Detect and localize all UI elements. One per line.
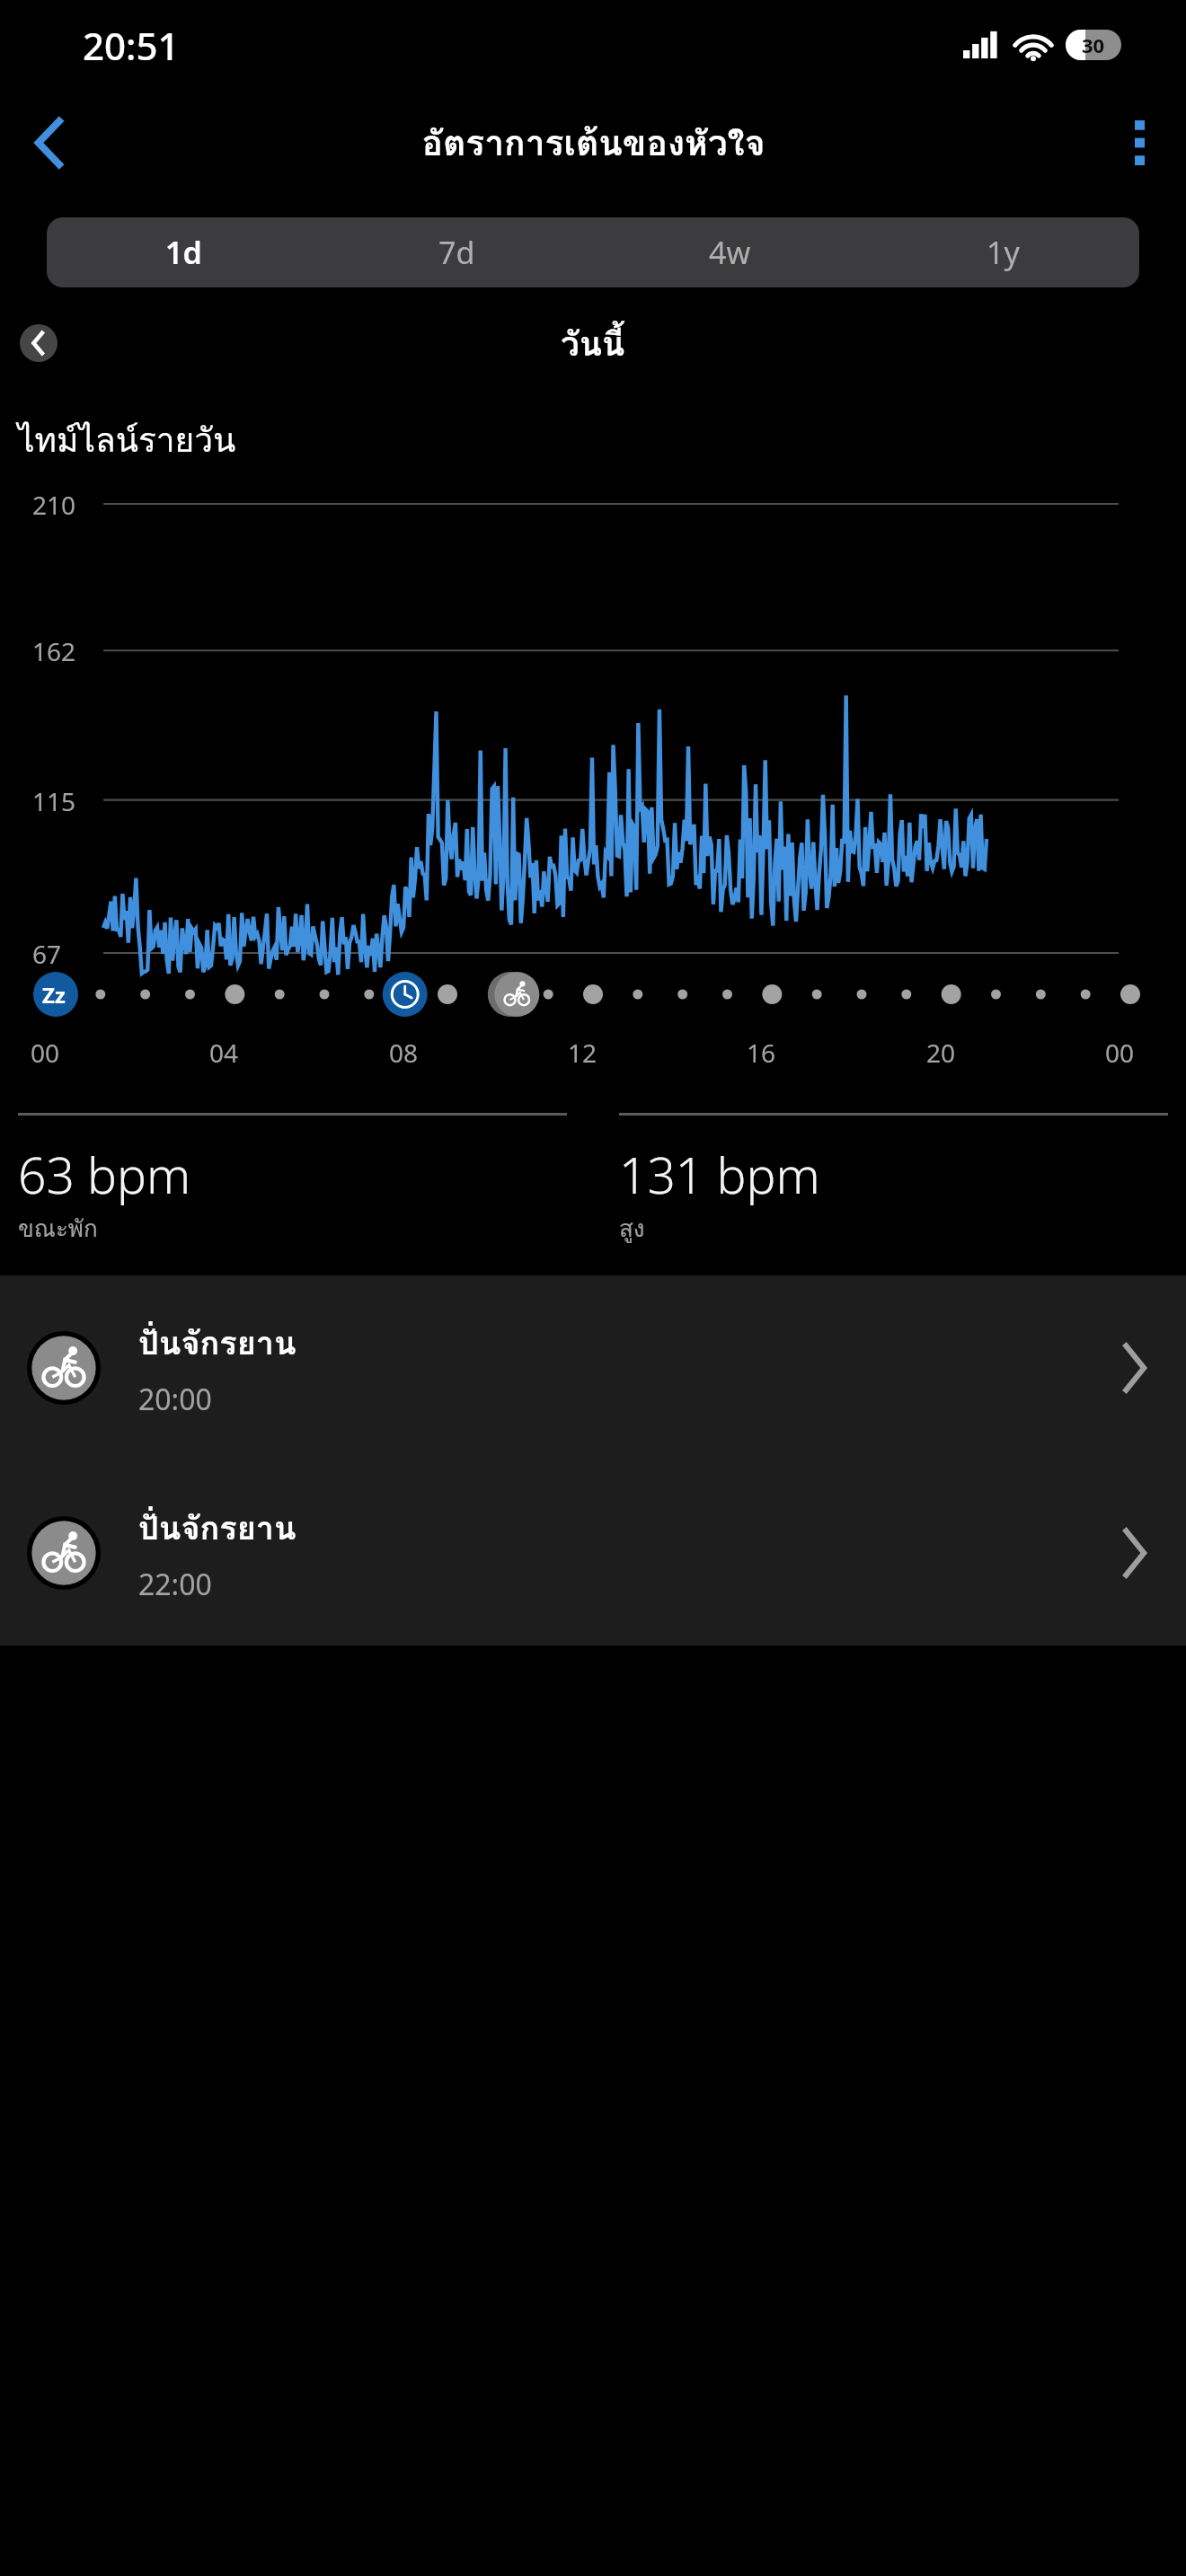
staticText: 115 bbox=[32, 784, 76, 818]
button[interactable]: More options bbox=[1093, 96, 1186, 190]
button[interactable]: Back bbox=[0, 93, 101, 193]
staticText: 12 bbox=[568, 1036, 597, 1070]
staticText: 22:00 bbox=[138, 1565, 212, 1604]
staticText: ขณะพัก bbox=[18, 1210, 98, 1247]
button[interactable]: Previous day bbox=[20, 324, 58, 362]
staticText: 162 bbox=[32, 634, 76, 668]
staticText: สูง bbox=[619, 1210, 645, 1247]
staticText: 67 bbox=[32, 937, 62, 971]
button[interactable]: ปั่นจักรยาน bbox=[0, 1460, 1186, 1645]
staticText: 20:00 bbox=[138, 1380, 212, 1419]
staticText: 7d bbox=[438, 232, 475, 273]
staticText: 131 bpm bbox=[619, 1141, 820, 1208]
staticText: 20 bbox=[926, 1036, 956, 1070]
staticText: Zz bbox=[42, 980, 66, 1010]
staticText: ปั่นจักรยาน bbox=[138, 1318, 296, 1369]
button[interactable]: 7d bbox=[320, 217, 593, 287]
button[interactable]: 1d bbox=[47, 217, 320, 287]
staticText: 4w bbox=[709, 232, 751, 273]
staticText: 00 bbox=[31, 1036, 60, 1070]
staticText: อัตราการเต้นของหัวใจ bbox=[421, 115, 766, 171]
staticText: ไทม์ไลน์รายวัน bbox=[18, 413, 236, 466]
staticText: 16 bbox=[747, 1036, 776, 1070]
staticText: 30 bbox=[1082, 31, 1105, 58]
staticText: วันนี้ bbox=[561, 317, 625, 370]
button[interactable]: 4w bbox=[593, 217, 866, 287]
staticText: ปั่นจักรยาน bbox=[138, 1503, 296, 1554]
button[interactable]: 1y bbox=[866, 217, 1139, 287]
staticText: 20:51 bbox=[83, 20, 180, 71]
staticText: 1y bbox=[987, 232, 1020, 273]
button[interactable]: ปั่นจักรยาน bbox=[0, 1275, 1186, 1460]
staticText: 08 bbox=[389, 1036, 419, 1070]
staticText: 00 bbox=[1105, 1036, 1135, 1070]
staticText: 1d bbox=[165, 232, 202, 273]
staticText: 04 bbox=[209, 1036, 239, 1070]
staticText: 210 bbox=[32, 488, 76, 522]
staticText: 63 bpm bbox=[18, 1141, 191, 1208]
